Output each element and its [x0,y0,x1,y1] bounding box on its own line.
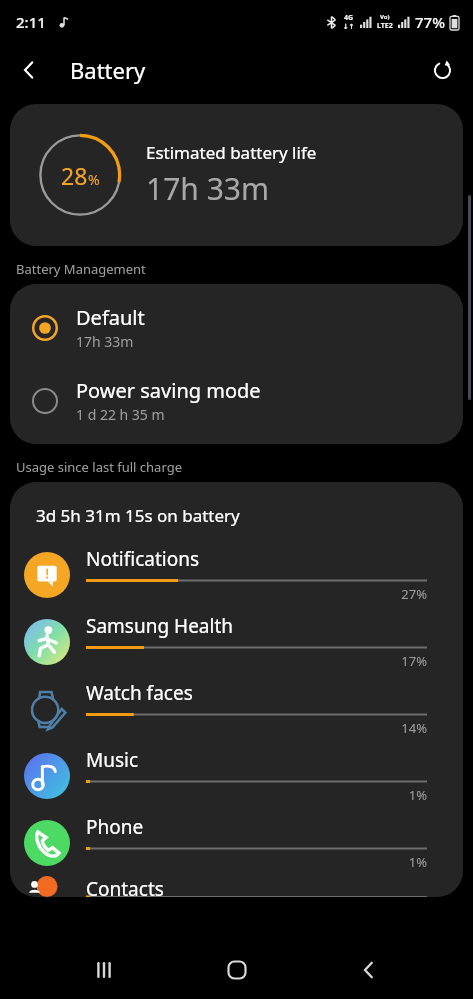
staticText: 3d 5h 31m 15s on battery [36,504,240,527]
staticText: Battery [70,55,146,85]
staticText: Watch faces [86,680,193,706]
staticText: 77% [415,12,445,32]
staticText: Power saving mode [76,377,261,404]
staticText: Contacts [86,876,164,897]
button[interactable]: Samsung Health [10,608,463,675]
staticText: 2:11 [16,12,46,32]
staticText: 17h 33m [146,168,270,209]
staticText: Estimated battery life [146,141,317,164]
staticText: Music [86,747,139,773]
staticText: Notifications [86,546,200,572]
staticText: Vo) [380,13,390,21]
staticText: 1% [86,786,427,804]
staticText: 4G [344,13,354,23]
staticText: 1 d 22 h 35 m [76,405,165,424]
button[interactable]: Music [10,742,463,809]
staticText: 17h 33m [76,332,134,351]
staticText: 1% [86,853,427,871]
button[interactable]: Back [6,47,52,93]
staticText: Samsung Health [86,613,234,639]
button[interactable]: Refresh [419,47,465,93]
staticText: Battery Management [16,260,146,278]
staticText: Default [76,304,145,331]
staticText: 27% [86,585,427,603]
staticText: 17% [86,652,427,670]
staticText: 28 [61,160,88,191]
staticText: Phone [86,814,144,840]
button[interactable]: Phone [10,809,463,876]
button[interactable]: Power saving mode [10,371,463,430]
button[interactable]: Default [10,298,463,357]
staticText: ↓↑ [343,23,355,31]
button[interactable]: 28 [10,104,463,246]
staticText: 14% [86,719,427,737]
staticText: Usage since last full charge [16,458,182,476]
button[interactable]: Notifications [10,541,463,608]
button[interactable]: Home [208,941,266,999]
staticText: LTE2 [377,21,393,31]
button[interactable]: Contacts [10,876,463,897]
button[interactable]: Watch faces [10,675,463,742]
staticText: % [88,170,100,189]
button[interactable]: Recents [75,941,133,999]
button[interactable]: Back [340,941,398,999]
